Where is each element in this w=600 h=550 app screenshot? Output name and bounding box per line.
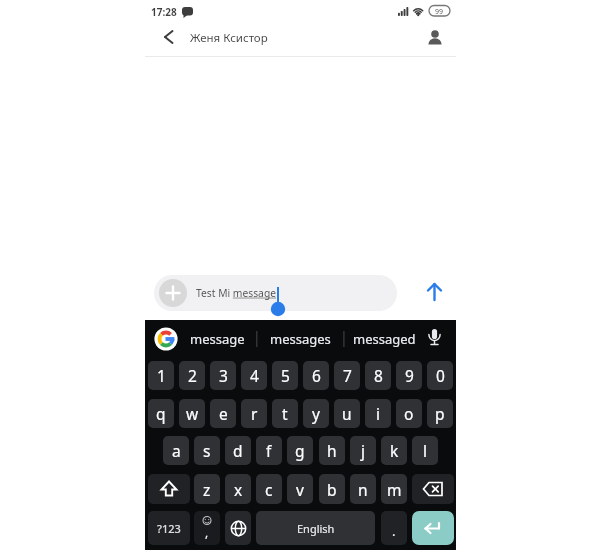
staticText: w — [186, 403, 199, 424]
staticText: z — [203, 479, 211, 500]
button[interactable]: g — [287, 436, 313, 465]
button[interactable]: 0 — [427, 361, 453, 390]
staticText: 7 — [343, 365, 352, 386]
button[interactable]: y — [303, 399, 329, 428]
button[interactable]: k — [381, 436, 407, 465]
staticText: 99 — [435, 7, 444, 17]
button[interactable] — [157, 26, 181, 48]
staticText: Test Mi message — [196, 286, 277, 300]
button[interactable]: p — [427, 399, 453, 428]
staticText: 4 — [250, 365, 259, 386]
button[interactable] — [421, 275, 449, 307]
staticText: ?123 — [157, 521, 181, 536]
button[interactable] — [154, 275, 397, 311]
staticText: c — [265, 479, 273, 500]
button[interactable] — [225, 511, 251, 545]
button[interactable]: English — [256, 511, 375, 545]
staticText: y — [312, 403, 320, 424]
button[interactable]: 4 — [241, 361, 267, 390]
staticText: messages — [270, 330, 331, 348]
button[interactable]: o — [396, 399, 422, 428]
staticText: . — [392, 522, 396, 540]
button[interactable]: 3 — [210, 361, 236, 390]
staticText: h — [327, 440, 337, 461]
button[interactable]: 6 — [303, 361, 329, 390]
staticText: t — [282, 403, 288, 424]
staticText: v — [296, 479, 304, 500]
staticText: u — [342, 403, 352, 424]
button[interactable]: m — [381, 474, 407, 504]
staticText: e — [219, 403, 228, 424]
button[interactable]: 5 — [272, 361, 298, 390]
button[interactable]: a — [163, 436, 189, 465]
button[interactable]: v — [287, 474, 313, 504]
staticText: 17:28 — [151, 5, 177, 19]
staticText: n — [358, 479, 368, 500]
button[interactable]: x — [225, 474, 251, 504]
button[interactable]: t — [272, 399, 298, 428]
button[interactable]: h — [319, 436, 345, 465]
staticText: p — [435, 403, 445, 424]
button[interactable]: s — [194, 436, 220, 465]
staticText: Женя Ксистор — [190, 30, 268, 46]
button[interactable]: w — [179, 399, 205, 428]
staticText: l — [423, 440, 427, 461]
button[interactable]: 2 — [179, 361, 205, 390]
staticText: x — [234, 479, 243, 500]
button[interactable]: l — [412, 436, 438, 465]
button[interactable]: d — [225, 436, 251, 465]
button[interactable]: . — [381, 511, 407, 545]
button[interactable]: c — [256, 474, 282, 504]
staticText: o — [404, 403, 414, 424]
button[interactable] — [426, 27, 444, 47]
button[interactable]: 7 — [334, 361, 360, 390]
staticText: d — [233, 440, 243, 461]
staticText: 0 — [436, 365, 445, 386]
button[interactable]: u — [334, 399, 360, 428]
button[interactable]: , — [194, 511, 220, 545]
button[interactable]: message — [162, 322, 272, 356]
staticText: message — [190, 330, 245, 348]
button[interactable] — [154, 327, 178, 351]
button[interactable]: messages — [245, 322, 355, 356]
staticText: i — [376, 403, 380, 424]
button[interactable]: messaged — [329, 322, 439, 356]
button[interactable]: n — [350, 474, 376, 504]
button[interactable]: 8 — [365, 361, 391, 390]
button[interactable] — [159, 279, 187, 307]
button[interactable]: f — [256, 436, 282, 465]
staticText: English — [297, 521, 335, 536]
staticText: j — [361, 440, 365, 461]
staticText: 6 — [312, 365, 321, 386]
button[interactable]: i — [365, 399, 391, 428]
button[interactable] — [148, 474, 190, 504]
button[interactable] — [412, 474, 454, 504]
button[interactable]: q — [148, 399, 174, 428]
staticText: 8 — [374, 365, 383, 386]
staticText: , — [205, 524, 209, 540]
staticText: k — [390, 440, 399, 461]
staticText: r — [251, 403, 258, 424]
staticText: m — [387, 479, 402, 500]
staticText: 9 — [405, 365, 414, 386]
staticText: 3 — [219, 365, 228, 386]
button[interactable]: z — [194, 474, 220, 504]
staticText: a — [172, 440, 181, 461]
button[interactable]: e — [210, 399, 236, 428]
staticText: 2 — [188, 365, 197, 386]
button[interactable]: r — [241, 399, 267, 428]
staticText: f — [266, 440, 272, 461]
button[interactable]: 1 — [148, 361, 174, 390]
staticText: s — [203, 440, 211, 461]
staticText: messaged — [353, 330, 416, 348]
button[interactable]: j — [350, 436, 376, 465]
staticText: q — [156, 403, 166, 424]
staticText: 1 — [157, 365, 166, 386]
staticText: 5 — [281, 365, 290, 386]
staticText: b — [327, 479, 337, 500]
staticText: g — [295, 440, 305, 461]
button[interactable] — [412, 511, 454, 545]
button[interactable]: 9 — [396, 361, 422, 390]
button[interactable]: ?123 — [148, 511, 190, 545]
button[interactable]: b — [319, 474, 345, 504]
